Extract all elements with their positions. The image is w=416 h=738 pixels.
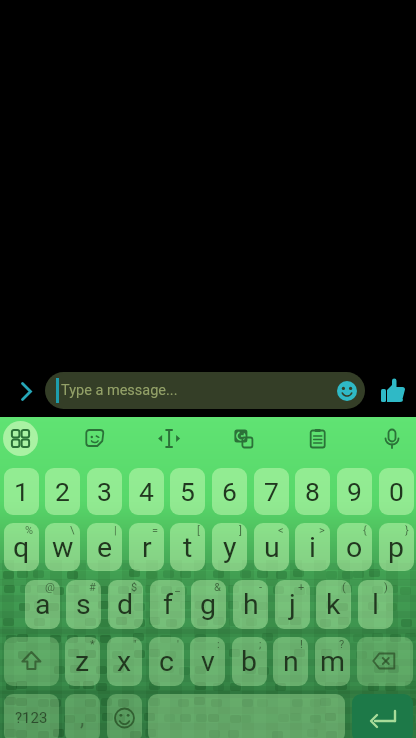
staticText: }: [405, 524, 409, 537]
button[interactable]: 8: [295, 468, 330, 515]
staticText: =: [152, 524, 159, 537]
staticText: v: [201, 645, 215, 678]
staticText: ': [177, 638, 179, 651]
button[interactable]: [3, 421, 38, 456]
button[interactable]: [372, 417, 412, 461]
button[interactable]: [357, 637, 413, 686]
button[interactable]: g: [191, 580, 226, 629]
staticText: 7: [264, 476, 279, 507]
button[interactable]: m: [315, 637, 350, 686]
staticText: $: [131, 581, 138, 594]
staticText: !: [300, 638, 303, 651]
staticText: ,: [80, 705, 85, 731]
staticText: ): [384, 581, 388, 594]
staticText: 6: [222, 476, 237, 507]
staticText: w: [52, 531, 74, 564]
staticText: j: [289, 588, 296, 621]
button[interactable]: y: [212, 523, 247, 571]
button[interactable]: 3: [87, 468, 122, 515]
staticText: _: [175, 581, 180, 594]
button[interactable]: j: [275, 580, 310, 629]
button[interactable]: [75, 417, 115, 461]
staticText: Type a message...: [61, 382, 178, 399]
button[interactable]: [337, 381, 357, 401]
button[interactable]: [149, 417, 189, 461]
staticText: ;: [259, 638, 262, 651]
button[interactable]: [352, 694, 413, 738]
button[interactable]: e: [87, 523, 122, 571]
staticText: f: [163, 588, 173, 621]
staticText: :: [217, 638, 220, 651]
staticText: x: [117, 645, 132, 678]
button[interactable]: 6: [212, 468, 247, 515]
button[interactable]: c: [149, 637, 184, 686]
button[interactable]: [381, 379, 405, 403]
button[interactable]: w: [45, 523, 80, 571]
button[interactable]: [4, 694, 59, 738]
staticText: |: [114, 524, 117, 537]
button[interactable]: r: [129, 523, 164, 571]
button[interactable]: x: [107, 637, 142, 686]
button[interactable]: v: [190, 637, 225, 686]
staticText: d: [117, 588, 134, 621]
button[interactable]: l: [358, 580, 393, 629]
button[interactable]: u: [254, 523, 289, 571]
button[interactable]: 0: [379, 468, 414, 515]
staticText: 1: [14, 476, 29, 507]
staticText: b: [241, 645, 258, 678]
staticText: h: [243, 588, 259, 621]
button[interactable]: h: [233, 580, 268, 629]
button[interactable]: o: [337, 523, 372, 571]
button[interactable]: z: [65, 637, 100, 686]
staticText: m: [320, 645, 345, 678]
staticText: l: [372, 588, 379, 621]
staticText: 8: [305, 476, 320, 507]
staticText: q: [13, 531, 30, 564]
staticText: i: [309, 531, 316, 564]
staticText: ?123: [15, 709, 48, 727]
button[interactable]: [107, 694, 142, 738]
staticText: 9: [347, 476, 362, 507]
button[interactable]: 4: [129, 468, 164, 515]
button[interactable]: 7: [254, 468, 289, 515]
button[interactable]: i: [295, 523, 330, 571]
button[interactable]: [298, 417, 338, 461]
button[interactable]: Type a message...: [45, 372, 365, 409]
staticText: -: [259, 581, 263, 594]
staticText: k: [326, 588, 341, 621]
button[interactable]: 2: [45, 468, 80, 515]
staticText: {: [363, 524, 367, 537]
staticText: n: [283, 645, 299, 678]
button[interactable]: 5: [170, 468, 205, 515]
button[interactable]: p: [379, 523, 414, 571]
staticText: \: [70, 524, 75, 537]
button[interactable]: [4, 637, 59, 686]
staticText: +: [298, 581, 305, 594]
staticText: 2: [55, 476, 70, 507]
button[interactable]: f: [150, 580, 185, 629]
staticText: ": [133, 638, 137, 651]
staticText: ?: [339, 638, 345, 651]
button[interactable]: [18, 380, 36, 402]
staticText: a: [35, 588, 51, 621]
button[interactable]: b: [232, 637, 267, 686]
staticText: z: [75, 645, 90, 678]
staticText: ]: [239, 524, 242, 537]
button[interactable]: d: [108, 580, 143, 629]
button[interactable]: s: [66, 580, 101, 629]
button[interactable]: 1: [4, 468, 39, 515]
button[interactable]: k: [316, 580, 351, 629]
button[interactable]: [223, 417, 263, 461]
staticText: y: [223, 531, 237, 564]
button[interactable]: n: [273, 637, 308, 686]
button[interactable]: [148, 694, 345, 738]
button[interactable]: a: [25, 580, 60, 629]
button[interactable]: q: [4, 523, 39, 571]
staticText: [: [197, 524, 200, 537]
button[interactable]: ,: [65, 694, 100, 738]
staticText: s: [76, 588, 91, 621]
button[interactable]: t: [170, 523, 205, 571]
staticText: (: [342, 581, 346, 594]
button[interactable]: 9: [337, 468, 372, 515]
staticText: t: [183, 531, 193, 564]
